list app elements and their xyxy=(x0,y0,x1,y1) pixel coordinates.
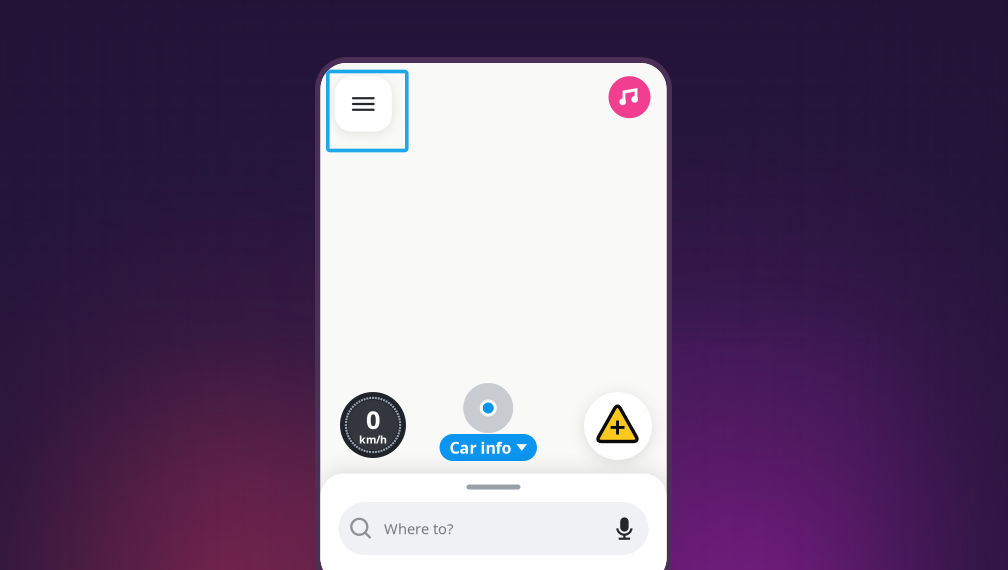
button[interactable]: Speed xyxy=(340,392,406,458)
button[interactable]: Music xyxy=(608,76,650,118)
staticText: 0 xyxy=(366,403,380,436)
button[interactable]: Car info xyxy=(439,434,537,461)
staticText: Where to? xyxy=(384,519,453,538)
button[interactable]: Menu xyxy=(328,71,407,150)
button[interactable]: Report xyxy=(584,392,652,460)
staticText: Car info xyxy=(449,437,511,458)
staticText: km/h xyxy=(359,432,387,446)
